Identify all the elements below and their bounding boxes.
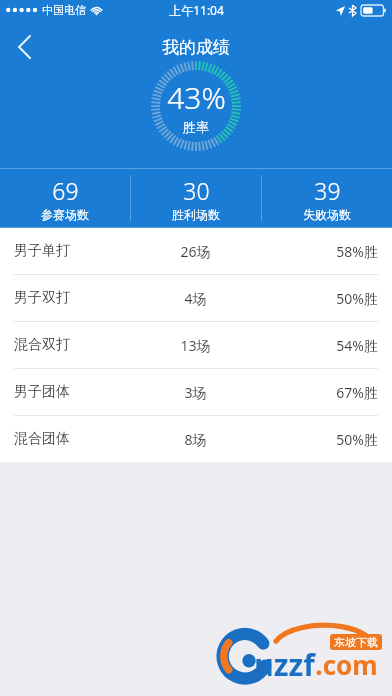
staticText: 失败场数 (303, 207, 351, 222)
staticText: 26场 (180, 242, 211, 261)
staticText: 胜率 (183, 119, 209, 135)
staticText: 男子单打 (14, 242, 70, 260)
staticText: 混合团体 (14, 430, 70, 448)
button[interactable]: 混合双打 (0, 322, 392, 368)
staticText: 50%胜 (336, 289, 378, 308)
staticText: 69 (52, 175, 79, 206)
button[interactable]: 男子双打 (0, 275, 392, 321)
staticText: .com (315, 647, 378, 682)
staticText: 参赛场数 (41, 207, 89, 222)
staticText: 男子双打 (14, 289, 70, 307)
button[interactable]: 30 (131, 169, 261, 227)
staticText: 67%胜 (336, 383, 378, 402)
staticText: uzzf (254, 644, 315, 685)
button[interactable]: 39 (262, 169, 392, 227)
staticText: 39 (314, 175, 341, 206)
staticText: 30 (183, 175, 210, 206)
button[interactable]: 男子单打 (0, 228, 392, 274)
button[interactable]: Back (0, 23, 48, 71)
staticText: 43% (167, 77, 226, 118)
staticText: 胜利场数 (172, 207, 220, 222)
staticText: 3场 (184, 383, 207, 402)
button[interactable]: 69 (0, 169, 130, 227)
staticText: 50%胜 (336, 430, 378, 449)
staticText: 中国电信 (42, 3, 86, 17)
staticText: 13场 (180, 336, 211, 355)
button[interactable]: 男子团体 (0, 369, 392, 415)
staticText: 东坡下载 (334, 635, 378, 649)
staticText: 8场 (184, 430, 207, 449)
staticText: 58%胜 (336, 242, 378, 261)
staticText: 男子团体 (14, 383, 70, 401)
staticText: 我的成绩 (162, 37, 230, 58)
staticText: 上午11:04 (169, 2, 224, 18)
button[interactable]: 混合团体 (0, 416, 392, 462)
staticText: 4场 (184, 289, 207, 308)
staticText: 混合双打 (14, 336, 70, 354)
staticText: 54%胜 (336, 336, 378, 355)
